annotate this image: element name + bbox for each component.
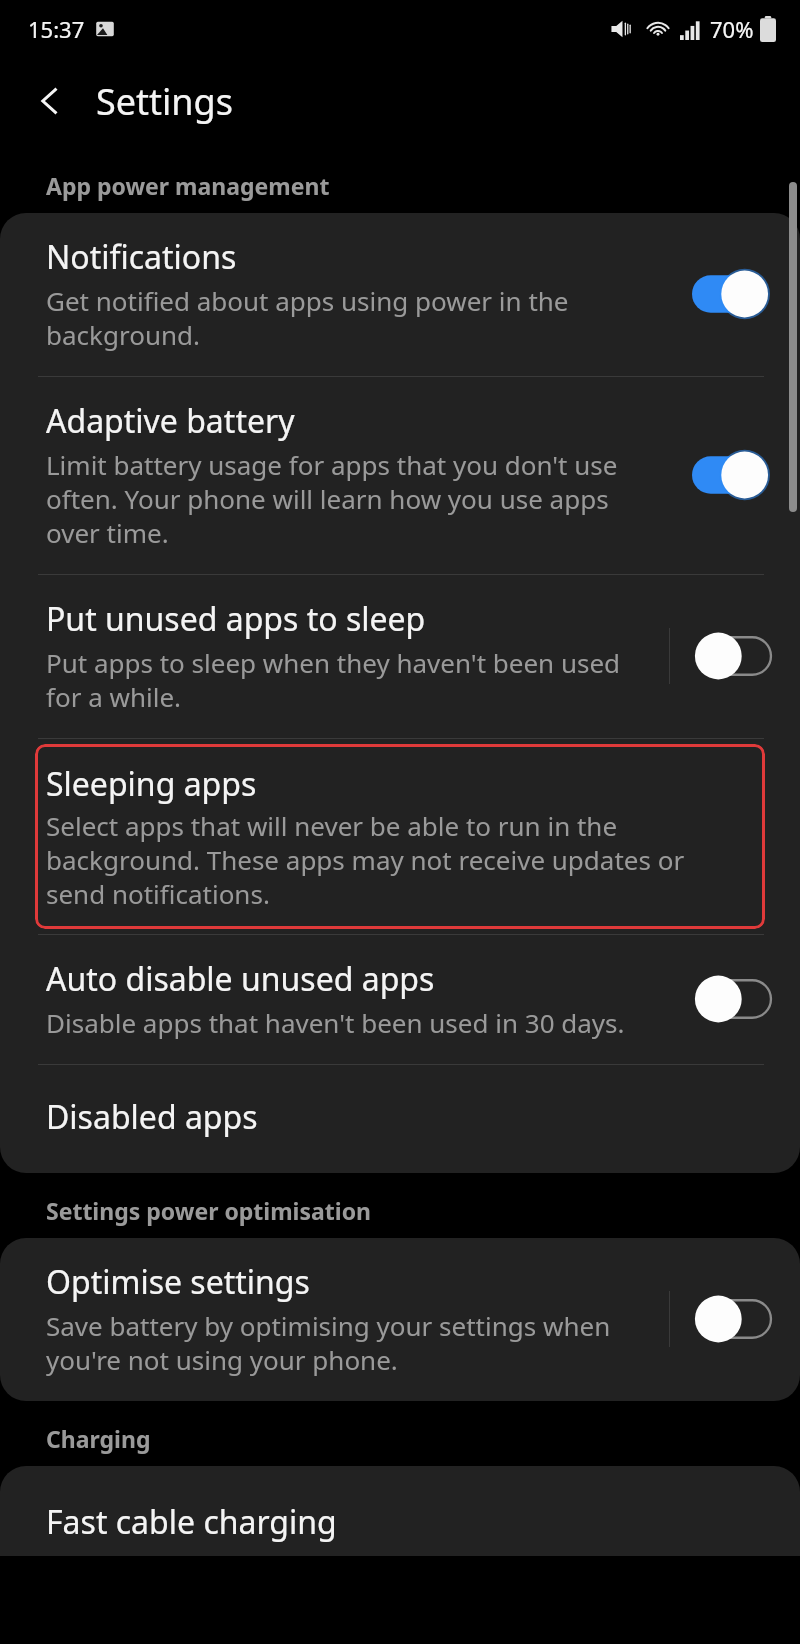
staticText: Select apps that will never be able to r… [46,808,685,911]
staticText: Settings power optimisation [46,1195,371,1226]
staticText: App power management [46,170,330,201]
staticText: Charging [46,1423,151,1454]
staticText: 15:37 [28,14,85,44]
button[interactable]: Put unused apps to sleep off [692,630,776,682]
button[interactable]: Adaptive battery [0,377,800,574]
staticText: Save battery by optimising your settings… [46,1308,611,1377]
button[interactable]: Auto disable unused apps [0,935,800,1064]
button[interactable]: Notifications on [692,268,776,320]
staticText: 70% [710,14,754,44]
staticText: Optimise settings [46,1260,310,1304]
button[interactable]: Adaptive battery on [692,449,776,501]
staticText: Fast cable charging [46,1500,337,1544]
staticText: Adaptive battery [46,399,295,443]
staticText: Disabled apps [46,1095,258,1139]
button[interactable]: Back [24,75,76,127]
staticText: Auto disable unused apps [46,957,435,1001]
button[interactable]: Disabled apps [0,1065,800,1173]
staticText: Notifications [46,235,237,279]
button[interactable]: Fast cable charging [0,1466,800,1556]
staticText: Limit battery usage for apps that you do… [46,447,618,550]
button[interactable]: Optimise settings off [692,1293,776,1345]
staticText: Settings [96,77,233,126]
staticText: Put apps to sleep when they haven't been… [46,645,621,714]
button[interactable]: Auto disable unused apps off [692,973,776,1025]
staticText: Sleeping apps [46,762,257,806]
button[interactable]: Optimise settings [0,1238,800,1401]
button[interactable]: Sleeping apps [35,744,765,929]
button[interactable]: Notifications [0,213,800,376]
staticText: Put unused apps to sleep [46,597,426,641]
button[interactable]: Put unused apps to sleep [0,575,800,738]
staticText: Disable apps that haven't been used in 3… [46,1005,625,1040]
staticText: Get notified about apps using power in t… [46,283,569,352]
